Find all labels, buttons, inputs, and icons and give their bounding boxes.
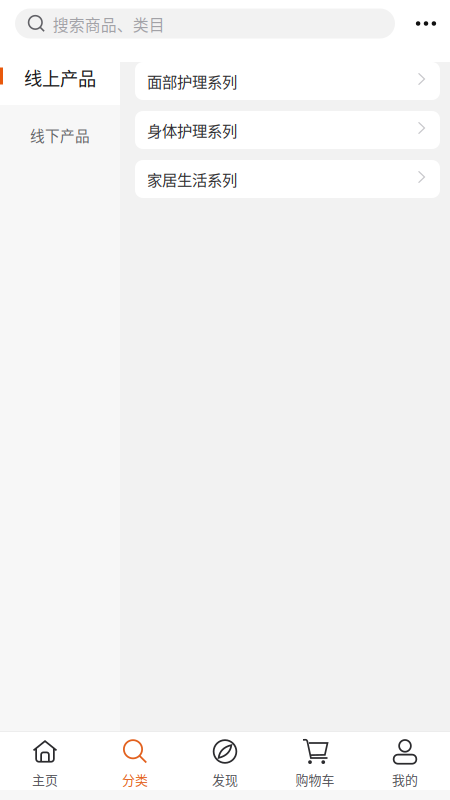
button[interactable]: 家居生活系列 bbox=[135, 160, 440, 198]
staticText: 面部护理系列 bbox=[147, 70, 237, 92]
button[interactable]: 更多 bbox=[408, 8, 444, 38]
staticText: 搜索商品、类目 bbox=[53, 12, 165, 35]
button[interactable]: 购物车 bbox=[270, 732, 360, 790]
button[interactable]: 线上产品 bbox=[0, 47, 120, 105]
staticText: 身体护理系列 bbox=[147, 119, 237, 141]
button[interactable]: 发现 bbox=[180, 732, 270, 790]
button[interactable]: 面部护理系列 bbox=[135, 62, 440, 100]
staticText: 购物车 bbox=[295, 770, 334, 789]
button[interactable]: 搜索商品、类目 bbox=[15, 8, 395, 38]
staticText: 发现 bbox=[212, 770, 238, 789]
button[interactable]: 主页 bbox=[0, 732, 90, 790]
button[interactable]: 线下产品 bbox=[0, 105, 120, 163]
staticText: 线上产品 bbox=[24, 64, 96, 91]
button[interactable]: 我的 bbox=[360, 732, 450, 790]
staticText: 线下产品 bbox=[30, 124, 90, 146]
staticText: 我的 bbox=[392, 770, 418, 789]
staticText: 主页 bbox=[32, 770, 58, 789]
button[interactable]: 分类 bbox=[90, 732, 180, 790]
staticText: 家居生活系列 bbox=[147, 168, 237, 190]
staticText: 分类 bbox=[122, 770, 148, 789]
button[interactable]: 身体护理系列 bbox=[135, 111, 440, 149]
